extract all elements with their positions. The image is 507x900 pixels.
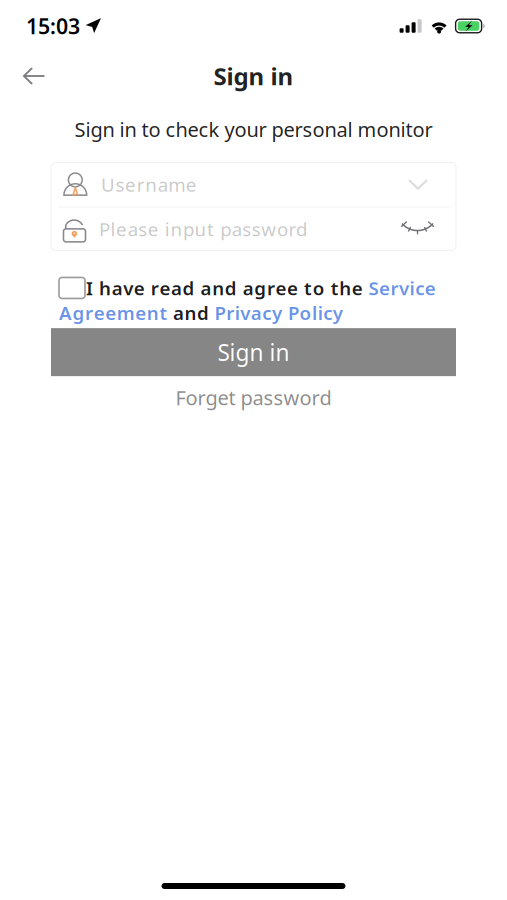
staticText: Forget password [175, 384, 331, 411]
staticText: Service [368, 276, 436, 300]
staticText: I have read and agree to the [86, 276, 368, 300]
staticText: Agreement [59, 300, 167, 325]
button[interactable]: Agree to terms [59, 277, 85, 298]
button[interactable]: Forget password [161, 379, 345, 416]
staticText: and [167, 300, 215, 325]
staticText: Username [101, 172, 197, 197]
staticText: 15:03 [26, 12, 80, 40]
staticText: Sign in [217, 337, 289, 367]
button[interactable]: Sign in [51, 328, 456, 376]
staticText: Please input password [99, 217, 307, 241]
button[interactable]: Privacy Policy [215, 300, 343, 325]
button[interactable]: Agreement [59, 300, 167, 325]
button[interactable]: Back [11, 54, 57, 98]
button[interactable]: Service [368, 276, 436, 300]
staticText: Privacy Policy [215, 300, 343, 325]
staticText: Sign in to check your personal monitor [74, 116, 432, 143]
staticText: Sign in [213, 60, 293, 92]
